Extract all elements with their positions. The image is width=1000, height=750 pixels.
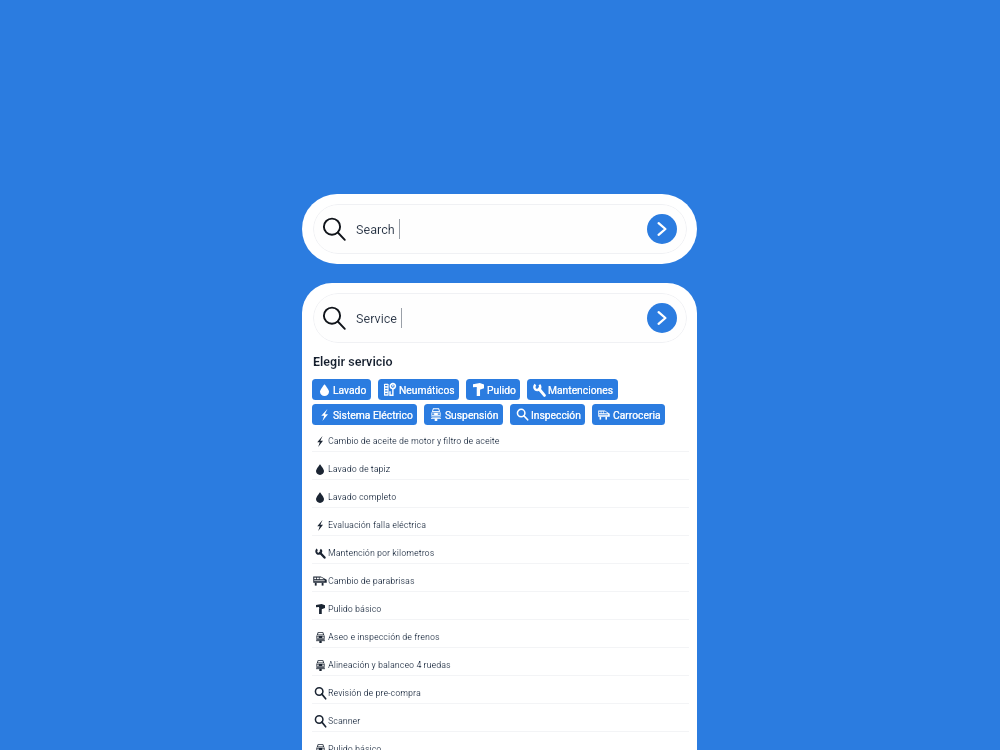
button[interactable]: Mantenciones: [527, 379, 618, 400]
staticText: Elegir servicio: [313, 354, 393, 369]
button[interactable]: Evaluación falla eléctrica: [302, 508, 697, 536]
staticText: Pulido básico: [328, 604, 382, 614]
button[interactable]: Submit search: [647, 214, 677, 244]
button[interactable]: Lavado completo: [302, 480, 697, 508]
button[interactable]: Scanner: [302, 704, 697, 732]
staticText: Carroceria: [613, 409, 661, 421]
button[interactable]: Aseo e inspección de frenos: [302, 620, 697, 648]
button[interactable]: Lavado de tapiz: [302, 452, 697, 480]
staticText: Pulido: [487, 384, 516, 396]
button[interactable]: Service: [313, 293, 687, 343]
staticText: Lavado completo: [328, 492, 397, 502]
button[interactable]: Inspección: [510, 404, 585, 425]
button[interactable]: Search: [313, 204, 687, 254]
button[interactable]: Sistema Eléctrico: [312, 404, 417, 425]
button[interactable]: Submit search: [647, 303, 677, 333]
button[interactable]: Cambio de aceite de motor y filtro de ac…: [302, 424, 697, 452]
button[interactable]: Alineación y balanceo 4 ruedas: [302, 648, 697, 676]
button[interactable]: Pulido básico: [302, 732, 697, 750]
staticText: Pulido básico: [328, 744, 382, 750]
button[interactable]: Neumáticos: [378, 379, 459, 400]
staticText: Lavado: [333, 384, 367, 396]
button[interactable]: Carroceria: [592, 404, 665, 425]
staticText: Neumáticos: [399, 384, 455, 396]
staticText: Cambio de aceite de motor y filtro de ac…: [328, 436, 500, 446]
button[interactable]: Lavado: [312, 379, 371, 400]
staticText: Lavado de tapiz: [328, 464, 391, 474]
staticText: Mantenciones: [548, 384, 614, 396]
button[interactable]: Pulido básico: [302, 592, 697, 620]
staticText: Search: [356, 222, 395, 237]
button[interactable]: Mantención por kilometros: [302, 536, 697, 564]
button[interactable]: Suspensión: [424, 404, 503, 425]
staticText: Mantención por kilometros: [328, 548, 435, 558]
staticText: Suspensión: [445, 409, 499, 421]
button[interactable]: Revisión de pre-compra: [302, 676, 697, 704]
staticText: Inspección: [531, 409, 581, 421]
staticText: Revisión de pre-compra: [328, 688, 421, 698]
staticText: Scanner: [328, 716, 361, 726]
button[interactable]: Pulido: [466, 379, 520, 400]
staticText: Alineación y balanceo 4 ruedas: [328, 660, 451, 670]
staticText: Evaluación falla eléctrica: [328, 520, 427, 530]
staticText: Cambio de parabrisas: [328, 576, 415, 586]
staticText: Aseo e inspección de frenos: [328, 632, 440, 642]
staticText: Sistema Eléctrico: [333, 409, 413, 421]
button[interactable]: Cambio de parabrisas: [302, 564, 697, 592]
staticText: Service: [356, 311, 397, 326]
